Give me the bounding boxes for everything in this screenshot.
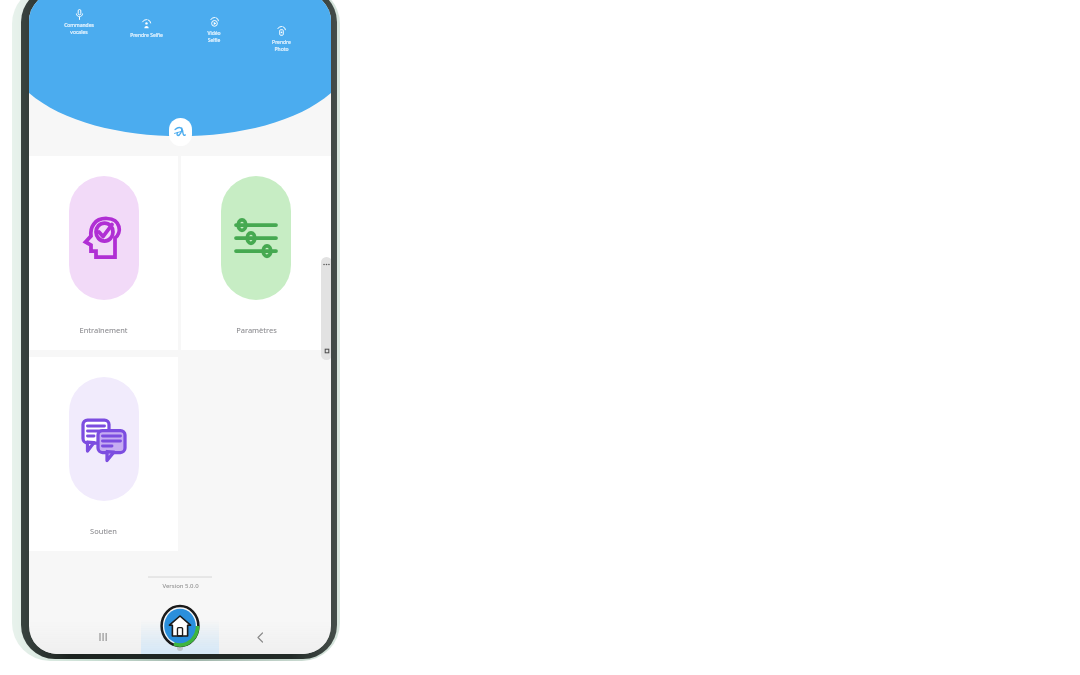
button[interactable]: Commandes vocales: [57, 7, 101, 38]
button[interactable]: Entraînement: [29, 156, 178, 350]
button[interactable]: Panneau latéral: [321, 257, 331, 360]
button[interactable]: Prendre Selfie: [124, 17, 168, 41]
staticText: Commandes vocales: [64, 22, 94, 36]
button[interactable]: Prendre Photo: [259, 24, 303, 55]
button[interactable]: Accueil: [157, 601, 203, 651]
button[interactable]: Vidéo Selfie: [192, 15, 236, 46]
staticText: Version 5.0.0: [162, 582, 199, 590]
staticText: Entraînement: [79, 325, 128, 335]
button[interactable]: Back: [251, 628, 269, 646]
staticText: Vidéo Selfie: [207, 30, 221, 44]
button[interactable]: Logo: [169, 118, 192, 146]
button[interactable]: Recents: [95, 628, 113, 646]
staticText: Prendre Selfie: [130, 32, 163, 39]
staticText: Prendre Photo: [272, 39, 291, 53]
staticText: Soutien: [90, 526, 117, 536]
button[interactable]: Soutien: [29, 357, 178, 551]
button[interactable]: Paramètres: [181, 156, 331, 350]
staticText: Paramètres: [236, 325, 277, 335]
